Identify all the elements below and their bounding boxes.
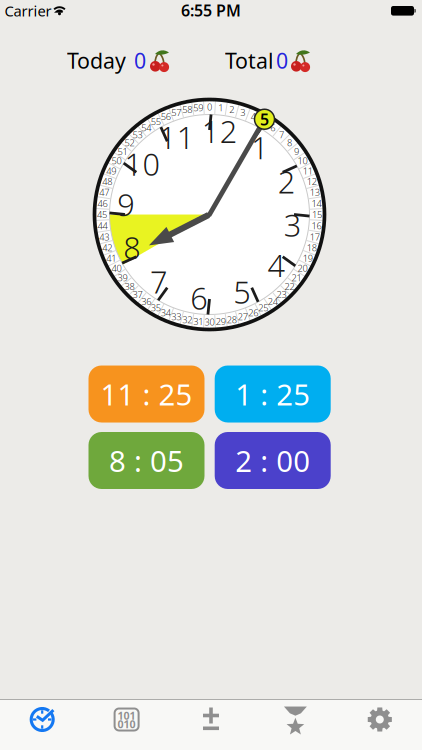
staticText: 1 bbox=[218, 101, 223, 114]
staticText: 29 bbox=[216, 315, 226, 328]
button[interactable]: 11 : 25 bbox=[88, 365, 204, 422]
staticText: 51 bbox=[117, 145, 127, 157]
button[interactable]: 2 : 00 bbox=[215, 432, 331, 489]
staticText: 56 bbox=[161, 110, 171, 122]
staticText: 3 bbox=[240, 106, 245, 118]
staticText: 10 bbox=[298, 155, 308, 167]
staticText: 46 bbox=[98, 197, 108, 209]
staticText: 8 bbox=[123, 227, 141, 268]
staticText: 44 bbox=[98, 219, 108, 232]
staticText: 21 bbox=[291, 271, 301, 284]
staticText: 8 bbox=[287, 136, 292, 149]
staticText: 16 bbox=[311, 219, 321, 232]
staticText: 33 bbox=[171, 310, 181, 323]
staticText: 6:55 PM bbox=[181, 0, 241, 21]
staticText: 38 bbox=[125, 280, 135, 293]
staticText: 11 : 25 bbox=[100, 374, 192, 413]
button[interactable]: Clock quiz bbox=[0, 699, 84, 749]
staticText: 39 bbox=[117, 271, 127, 284]
staticText: 36 bbox=[141, 295, 151, 308]
staticText: 54 bbox=[141, 121, 151, 134]
staticText: 43 bbox=[99, 231, 109, 243]
staticText: 7 bbox=[279, 128, 284, 141]
staticText: 34 bbox=[161, 306, 171, 319]
staticText: 0 bbox=[276, 46, 288, 75]
staticText: 12 bbox=[202, 111, 238, 151]
staticText: 17 bbox=[310, 231, 320, 243]
staticText: 41 bbox=[106, 252, 116, 264]
staticText: Carrier bbox=[4, 1, 51, 21]
staticText: 2 : 00 bbox=[235, 441, 310, 480]
staticText: 53 bbox=[133, 128, 143, 141]
staticText: 40 bbox=[111, 262, 121, 274]
staticText: 5 bbox=[233, 271, 251, 312]
staticText: 010 bbox=[118, 717, 136, 731]
staticText: 2 bbox=[229, 103, 234, 116]
staticText: 55 bbox=[151, 115, 161, 128]
staticText: 7 bbox=[150, 261, 168, 302]
staticText: Total bbox=[225, 46, 274, 75]
staticText: 32 bbox=[182, 313, 192, 326]
staticText: 5 bbox=[261, 115, 266, 128]
staticText: 5 bbox=[260, 109, 269, 130]
staticText: 3 bbox=[284, 204, 302, 245]
staticText: 2 bbox=[278, 161, 296, 202]
staticText: Today bbox=[67, 46, 126, 75]
staticText: 9 bbox=[294, 145, 299, 157]
button[interactable]: 8 : 05 bbox=[88, 432, 204, 489]
staticText: 1 bbox=[251, 127, 269, 168]
staticText: 10 bbox=[124, 144, 160, 184]
staticText: 50 bbox=[111, 155, 121, 167]
staticText: 4 bbox=[251, 110, 256, 122]
button[interactable]: Achievements bbox=[253, 699, 337, 749]
staticText: 8 : 05 bbox=[109, 441, 184, 480]
staticText: 13 bbox=[310, 186, 320, 198]
staticText: 23 bbox=[276, 288, 286, 301]
staticText: 101 bbox=[118, 708, 136, 723]
staticText: 22 bbox=[284, 280, 294, 293]
staticText: 37 bbox=[133, 288, 143, 301]
staticText: 14 bbox=[311, 197, 321, 209]
staticText: 58 bbox=[182, 103, 192, 116]
staticText: 1 : 25 bbox=[235, 374, 310, 413]
staticText: 20 bbox=[298, 262, 308, 274]
staticText: 49 bbox=[106, 165, 116, 177]
button[interactable]: Arithmetic quiz bbox=[169, 699, 253, 749]
staticText: 6 bbox=[190, 277, 208, 318]
staticText: 0 bbox=[207, 101, 212, 113]
staticText: 42 bbox=[102, 241, 112, 254]
staticText: 26 bbox=[248, 306, 258, 319]
staticText: 47 bbox=[99, 186, 109, 198]
staticText: 30 bbox=[204, 316, 214, 328]
staticText: 6 bbox=[270, 121, 275, 134]
staticText: 12 bbox=[307, 175, 317, 187]
staticText: 4 bbox=[268, 245, 286, 285]
staticText: 57 bbox=[171, 106, 181, 118]
staticText: 24 bbox=[268, 295, 278, 308]
staticText: 25 bbox=[258, 301, 268, 314]
button[interactable]: 1 : 25 bbox=[215, 365, 331, 422]
staticText: 19 bbox=[303, 252, 313, 264]
button[interactable]: Binary quiz bbox=[85, 699, 169, 749]
staticText: 28 bbox=[227, 313, 237, 326]
staticText: 18 bbox=[307, 241, 317, 254]
staticText: 35 bbox=[151, 301, 161, 314]
staticText: 52 bbox=[125, 136, 135, 149]
staticText: 9 bbox=[117, 184, 135, 225]
staticText: 11 bbox=[159, 117, 195, 157]
staticText: 11 bbox=[303, 165, 313, 177]
staticText: 0 bbox=[134, 46, 146, 75]
staticText: 59 bbox=[193, 101, 203, 114]
button[interactable]: Settings bbox=[338, 699, 422, 749]
staticText: 48 bbox=[102, 175, 112, 187]
staticText: 27 bbox=[238, 310, 248, 323]
staticText: 31 bbox=[193, 315, 203, 328]
staticText: 15 bbox=[312, 208, 322, 221]
staticText: 45 bbox=[97, 208, 107, 221]
